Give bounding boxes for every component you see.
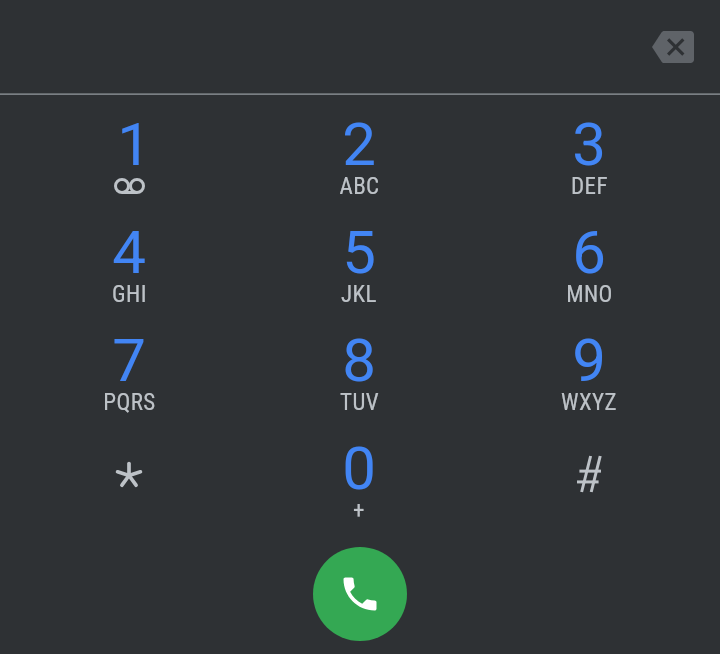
staticText: DEF [571, 173, 608, 200]
staticText: 3 [572, 109, 606, 179]
button[interactable]: 3 DEF [474, 94, 704, 202]
button[interactable]: 6 MNO [474, 202, 704, 310]
button[interactable]: Backspace [642, 16, 704, 78]
staticText: PQRS [103, 389, 156, 416]
button[interactable]: Star [14, 418, 244, 526]
button[interactable]: 4 GHI [14, 202, 244, 310]
staticText: 7 [112, 325, 146, 395]
staticText: WXYZ [561, 389, 617, 416]
staticText: 8 [342, 325, 376, 395]
staticText: 2 [342, 109, 376, 179]
staticText: 9 [572, 325, 606, 395]
staticText: JKL [341, 281, 377, 308]
staticText: GHI [112, 281, 147, 308]
button[interactable]: 2 ABC [244, 94, 474, 202]
staticText: ABC [339, 173, 380, 200]
button[interactable]: 1 voicemail [14, 94, 244, 202]
staticText: 4 [112, 217, 146, 287]
staticText: TUV [340, 389, 379, 416]
button[interactable]: 8 TUV [244, 310, 474, 418]
button[interactable]: 0 + [244, 418, 474, 526]
button[interactable]: Call [313, 547, 407, 641]
staticText: + [353, 497, 365, 524]
staticText: 5 [342, 217, 376, 287]
button[interactable]: 7 PQRS [14, 310, 244, 418]
staticText: MNO [566, 281, 613, 308]
button[interactable]: 5 JKL [244, 202, 474, 310]
button[interactable]: Pound [474, 418, 704, 526]
staticText: 0 [342, 433, 376, 503]
staticText: 1 [117, 109, 151, 179]
button[interactable]: 9 WXYZ [474, 310, 704, 418]
staticText: 6 [572, 217, 606, 287]
